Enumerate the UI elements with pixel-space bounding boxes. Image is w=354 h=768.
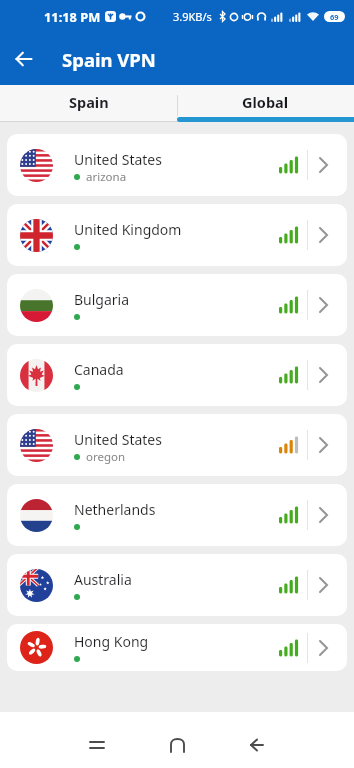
button[interactable]: Australia [7, 554, 347, 616]
button[interactable]: Global [177, 85, 354, 118]
staticText: Netherlands [74, 500, 156, 519]
staticText: 11:18 PM [44, 8, 101, 25]
button[interactable] [153, 712, 201, 768]
staticText: United States [74, 150, 162, 169]
staticText: United States [74, 430, 162, 449]
button[interactable]: Spain [0, 85, 177, 118]
staticText: Spain [69, 92, 109, 112]
staticText: Hong Kong [74, 632, 149, 651]
staticText: Australia [74, 570, 132, 589]
button[interactable]: Bulgaria [7, 274, 347, 336]
staticText: oregon [86, 449, 126, 465]
button[interactable]: Netherlands [7, 484, 347, 546]
button[interactable] [0, 35, 48, 83]
staticText: arizona [86, 169, 127, 185]
button[interactable]: United States [7, 134, 347, 196]
staticText: Global [242, 92, 289, 112]
button[interactable]: Hong Kong [7, 624, 347, 671]
button[interactable]: United Kingdom [7, 204, 347, 266]
button[interactable] [233, 712, 281, 768]
staticText: 3.9KB/s [173, 9, 212, 24]
staticText: Canada [74, 360, 124, 379]
staticText: Bulgaria [74, 290, 130, 309]
staticText: United Kingdom [74, 220, 182, 239]
button[interactable]: Canada [7, 344, 347, 406]
button[interactable] [73, 712, 121, 768]
staticText: 69 [330, 12, 339, 22]
staticText: Spain VPN [62, 47, 156, 72]
button[interactable]: United States [7, 414, 347, 476]
